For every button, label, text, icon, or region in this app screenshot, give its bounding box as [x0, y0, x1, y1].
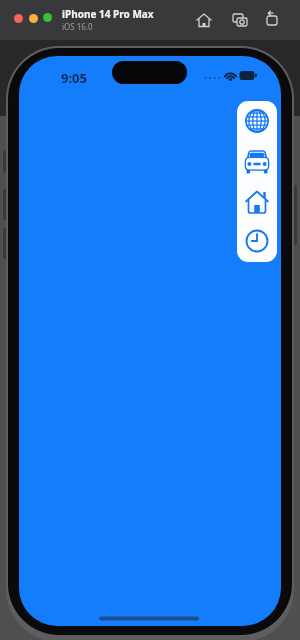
button[interactable]: [237, 181, 277, 221]
button[interactable]: [237, 141, 277, 181]
button[interactable]: [29, 14, 38, 23]
button[interactable]: [43, 13, 52, 22]
button[interactable]: [14, 14, 23, 23]
staticText: iOS 16.0: [62, 21, 93, 32]
button[interactable]: [237, 101, 277, 141]
staticText: 9:05: [61, 69, 87, 85]
button[interactable]: [194, 10, 214, 30]
button[interactable]: [237, 221, 277, 261]
button[interactable]: [262, 10, 282, 30]
button[interactable]: [230, 10, 250, 30]
staticText: iPhone 14 Pro Max: [62, 7, 154, 21]
